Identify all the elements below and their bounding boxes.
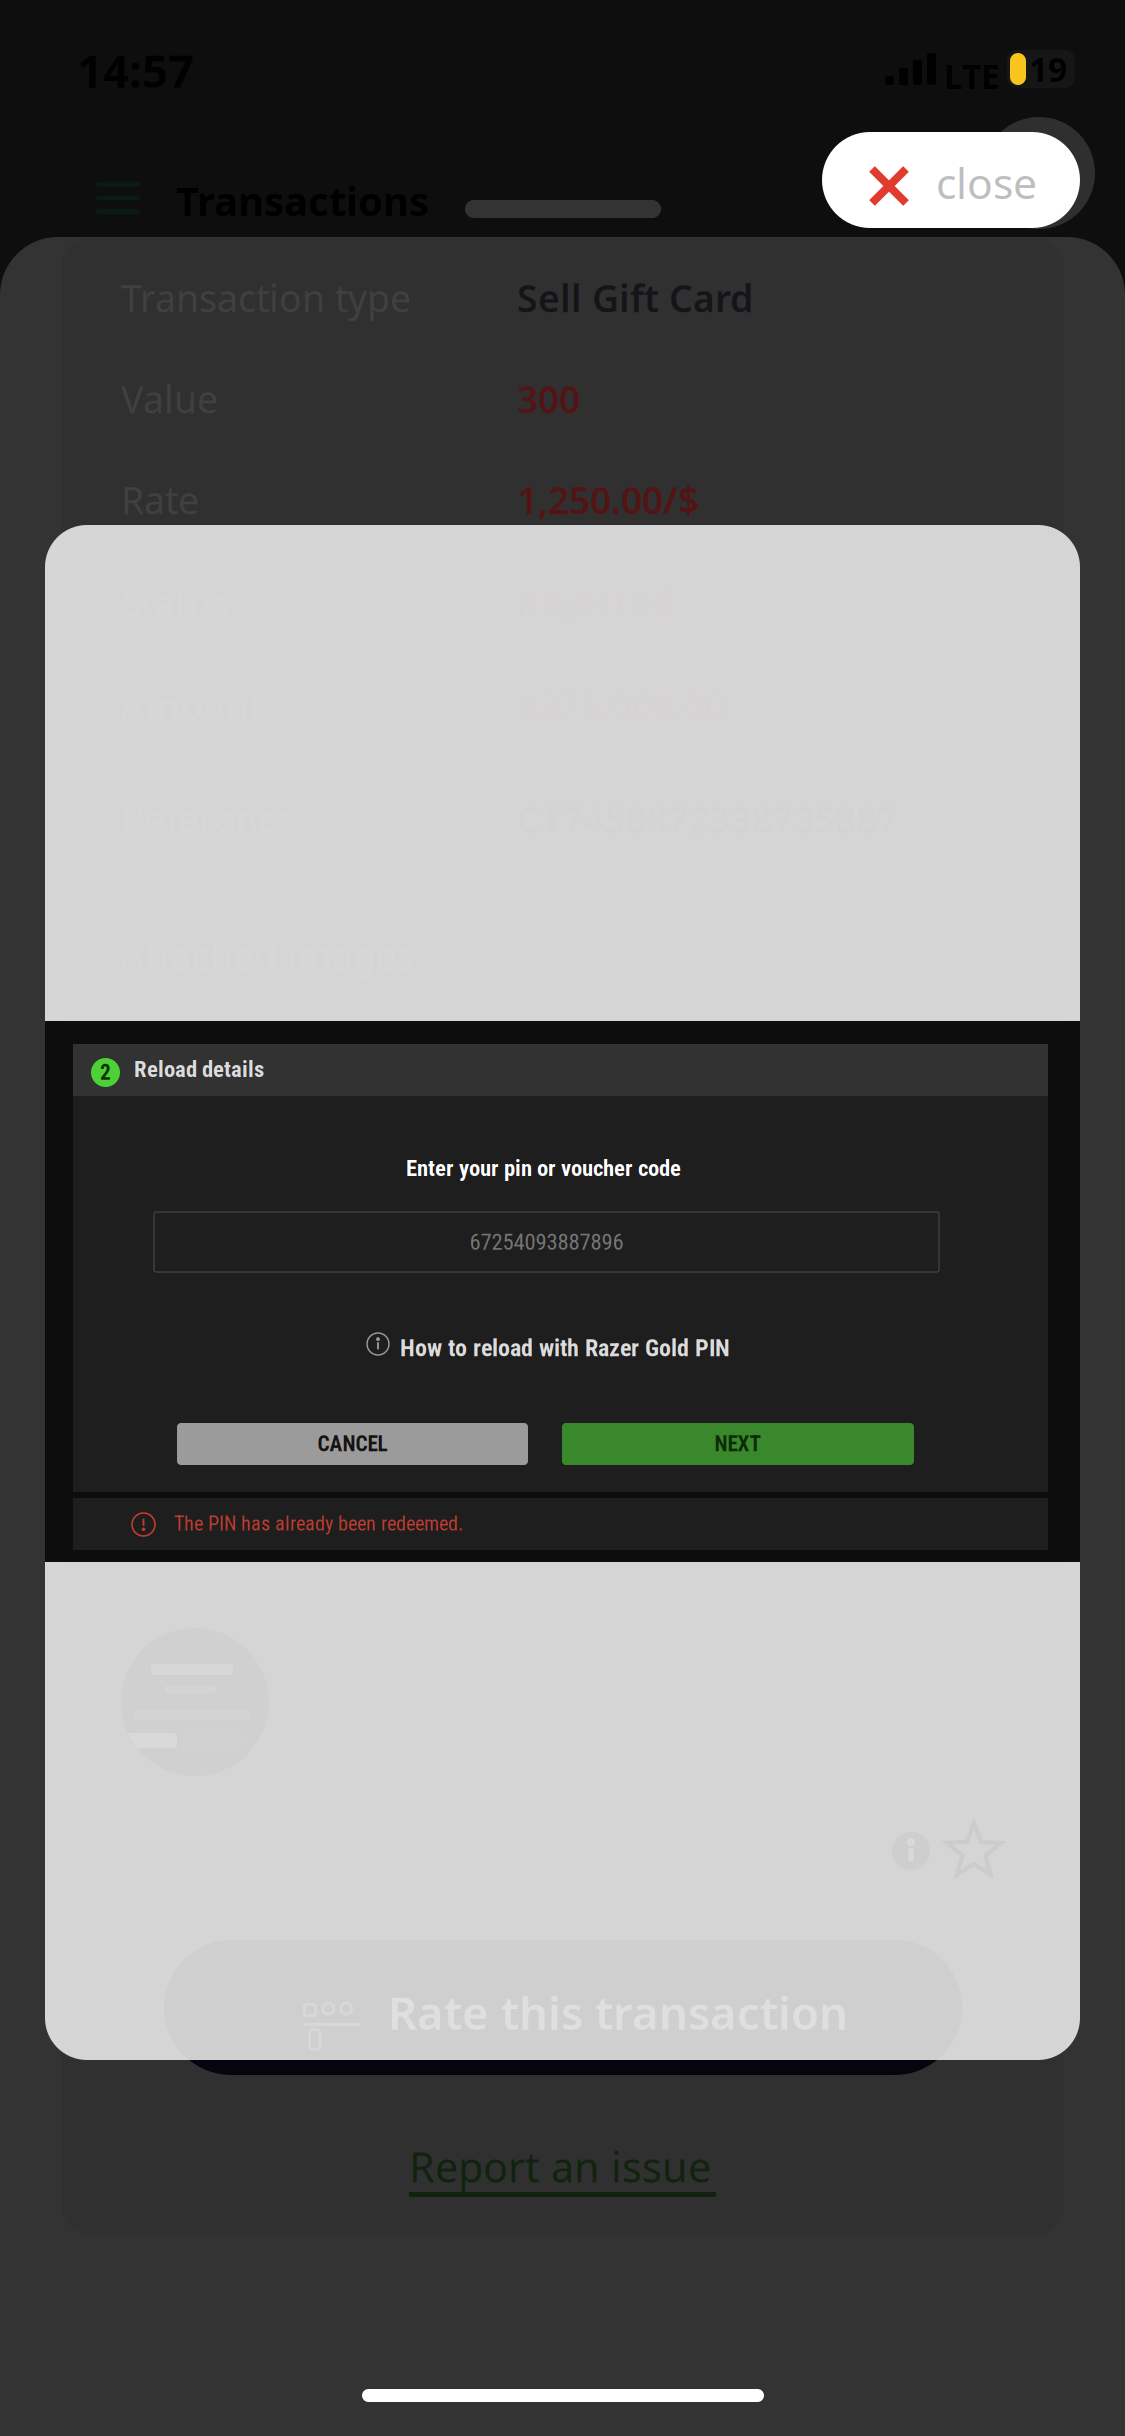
- staticText: Value: [121, 374, 218, 424]
- button[interactable]: Menu: [72, 158, 164, 238]
- staticText: Enter your pin or voucher code: [406, 1155, 681, 1182]
- staticText: The PIN has already been redeemed.: [174, 1512, 463, 1535]
- staticText: 19: [1029, 47, 1067, 91]
- staticText: How to reload with Razer Gold PIN: [400, 1334, 730, 1362]
- staticText: 2: [100, 1060, 111, 1085]
- staticText: LTE: [944, 54, 1000, 98]
- button[interactable]: Report an issue: [409, 2139, 716, 2211]
- staticText: CANCEL: [317, 1431, 387, 1456]
- button[interactable]: close: [822, 132, 1080, 228]
- staticText: Sell Gift Card: [517, 273, 753, 323]
- staticText: 67254093887896: [469, 1229, 623, 1255]
- staticText: 300: [517, 374, 580, 424]
- staticText: Rate: [121, 475, 199, 525]
- button[interactable]: [164, 1940, 962, 2075]
- staticText: close: [936, 154, 1037, 211]
- staticText: Rate this transaction: [388, 1982, 848, 2042]
- staticText: 14:57: [77, 40, 194, 100]
- button[interactable]: Rate this transaction: [164, 1940, 962, 2075]
- staticText: Report an issue: [409, 2139, 711, 2194]
- staticText: NEXT: [714, 1431, 761, 1456]
- staticText: Reload details: [134, 1056, 264, 1083]
- staticText: Transaction type: [121, 273, 411, 323]
- staticText: 1,250.00/$: [517, 475, 699, 525]
- staticText: Transactions: [176, 174, 429, 227]
